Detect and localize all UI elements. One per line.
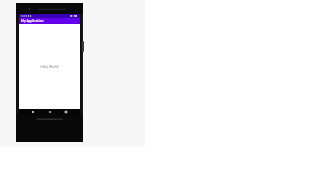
- other: Power button: [82, 41, 84, 52]
- button[interactable]: Back: [30, 109, 36, 115]
- button[interactable]: Home: [47, 109, 53, 115]
- staticText: My Application: [21, 19, 44, 23]
- button[interactable]: Recent apps: [63, 109, 69, 115]
- button[interactable]: My Application: [19, 18, 80, 24]
- staticText: Hello World!: [40, 65, 59, 69]
